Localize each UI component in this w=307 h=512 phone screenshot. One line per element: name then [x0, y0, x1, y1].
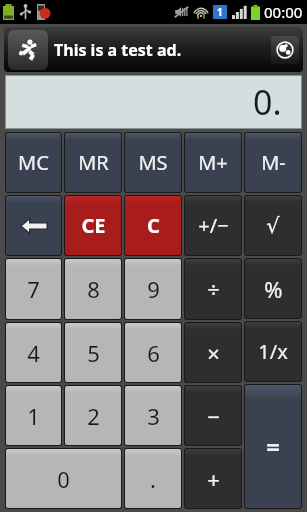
button[interactable]: Backspace [6, 196, 61, 255]
staticText: 0. [253, 79, 282, 125]
staticText: 0 [57, 464, 70, 494]
staticText: + [207, 464, 220, 494]
button[interactable]: M+ [185, 133, 241, 192]
staticText: 00:00 [264, 2, 303, 22]
staticText: 9 [147, 274, 160, 304]
staticText: 7 [27, 274, 40, 304]
staticText: − [207, 401, 220, 431]
staticText: This is a test ad. [54, 39, 182, 61]
staticText: MC [18, 149, 49, 176]
button[interactable]: % [245, 259, 301, 318]
button[interactable]: 4 [6, 323, 61, 382]
button[interactable]: 5 [65, 323, 121, 382]
staticText: . [150, 464, 156, 494]
staticText: 1 [217, 5, 223, 19]
staticText: M+ [198, 149, 228, 176]
staticText: √ [266, 214, 280, 238]
staticText: 3 [147, 401, 160, 431]
button[interactable]: 8 [65, 259, 121, 319]
staticText: = [266, 430, 280, 463]
staticText: 2 [87, 401, 100, 431]
button[interactable]: MR [65, 133, 121, 192]
staticText: 1/x [258, 338, 288, 365]
staticText: % [264, 274, 283, 304]
button[interactable]: . [125, 449, 181, 508]
staticText: M- [261, 149, 286, 176]
button[interactable]: × [185, 323, 241, 382]
button[interactable]: C [125, 196, 181, 255]
button[interactable]: 0 [6, 449, 121, 508]
button[interactable]: 6 [125, 323, 181, 382]
staticText: C [147, 212, 160, 239]
staticText: MS [138, 149, 168, 176]
staticText: 5 [87, 338, 100, 368]
staticText: 1 [27, 401, 40, 431]
staticText: ÷ [207, 274, 220, 304]
button[interactable]: 9 [125, 259, 181, 319]
button[interactable]: − [185, 386, 241, 445]
staticText: 6 [147, 338, 160, 368]
button[interactable]: + [185, 449, 241, 508]
button[interactable]: 3 [125, 386, 181, 445]
button[interactable]: = [245, 385, 301, 508]
button[interactable]: Advertiser [4, 27, 303, 72]
button[interactable]: √ [245, 196, 301, 255]
staticText: +/− [198, 212, 229, 239]
other: Advertiser [8, 30, 48, 70]
staticText: MR [78, 149, 109, 176]
button[interactable]: Open ad in browser [271, 36, 299, 64]
button[interactable]: 7 [6, 259, 61, 319]
button[interactable]: 1 [6, 386, 61, 445]
staticText: × [207, 338, 220, 368]
button[interactable]: M- [245, 133, 301, 192]
button[interactable]: +/− [185, 196, 241, 255]
staticText: 4 [27, 338, 40, 368]
button[interactable]: 2 [65, 386, 121, 445]
button[interactable]: MS [125, 133, 181, 192]
button[interactable]: CE [65, 196, 121, 255]
button[interactable]: 1/x [245, 322, 301, 381]
button[interactable]: ÷ [185, 259, 241, 319]
staticText: CE [81, 212, 106, 239]
button[interactable]: MC [6, 133, 61, 192]
staticText: 8 [87, 274, 100, 304]
